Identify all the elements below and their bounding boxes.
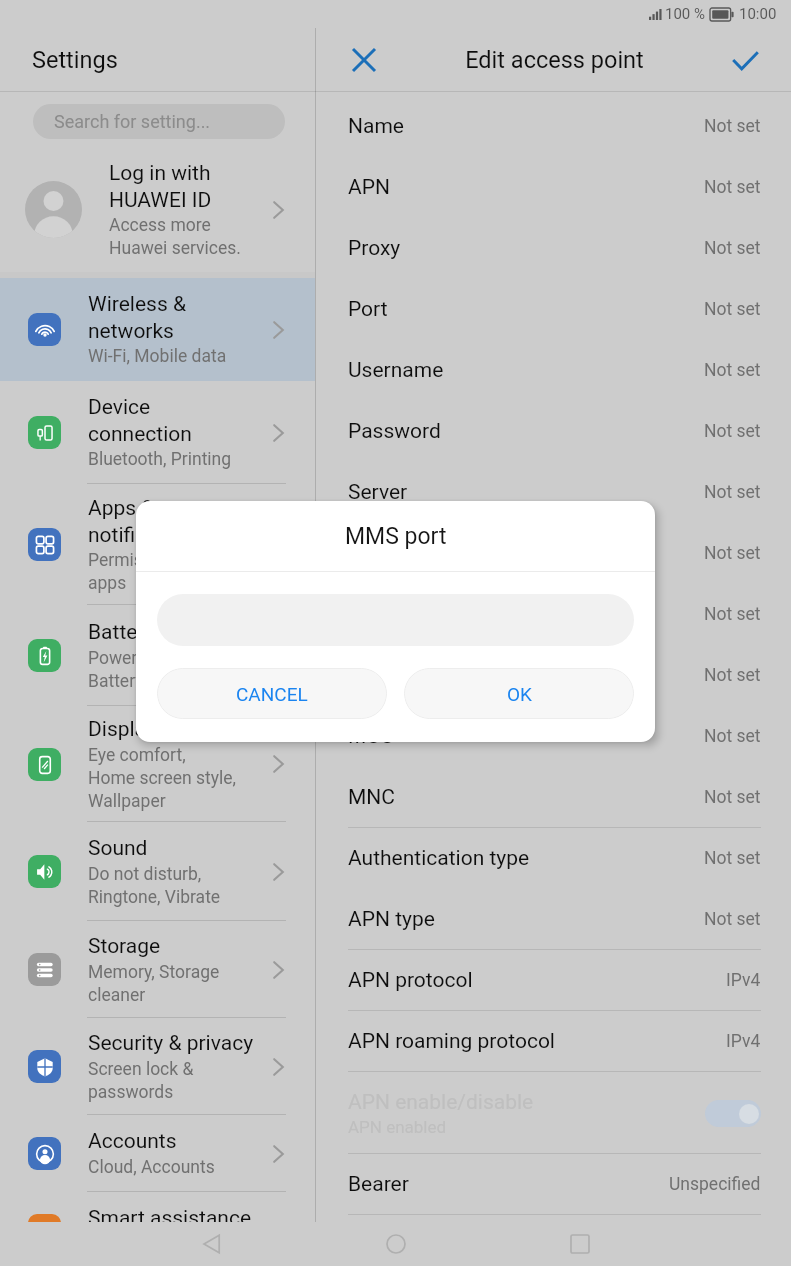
staticText: IPv4 [726,970,761,991]
button[interactable]: Security & privacy [0,1018,315,1115]
staticText: Display [88,717,156,742]
staticText: Wi-Fi, Mobile data [88,346,227,367]
staticText: Not set [704,360,761,381]
staticText: Storage [88,934,161,959]
staticText: Not set [704,726,761,747]
staticText: Port [348,297,388,322]
staticText: APN enabled [348,1117,447,1137]
staticText: Not set [704,238,761,259]
button[interactable]: APN [316,157,791,218]
staticText: APN [348,175,390,200]
button[interactable]: APN protocol [316,950,791,1011]
staticText: Settings [32,46,118,74]
button[interactable]: MNC [316,767,791,828]
staticText: Unspecified [669,1174,761,1195]
button[interactable]: Username [316,340,791,401]
staticText: Not set [704,787,761,808]
button[interactable]: CANCEL [157,668,387,719]
staticText: Wireless & networks [88,292,186,343]
staticText: Edit access point [388,46,721,74]
staticText: Authentication type [348,846,530,871]
button[interactable]: MMS proxy [316,584,791,645]
staticText: Smart assistance [88,1206,252,1222]
button[interactable]: Accounts [0,1115,315,1192]
button[interactable]: Server [316,462,791,523]
button[interactable]: Storage [0,921,315,1018]
staticText: CANCEL [236,683,308,705]
button[interactable]: Name [316,96,791,157]
button[interactable]: Log in with HUAWEI ID [0,139,315,272]
staticText: Eye comfort, Home screen style, Wallpape… [88,745,236,811]
staticText: Not set [704,177,761,198]
staticText: Not set [704,909,761,930]
button[interactable]: Recent apps [488,1222,672,1266]
staticText: MNC [348,785,395,810]
button[interactable]: APN roaming protocol [316,1011,791,1072]
button[interactable]: Device connection [0,381,315,484]
staticText: IPv4 [726,1031,761,1052]
staticText: Password [348,419,441,444]
staticText: Not set [704,604,761,625]
staticText: APN protocol [348,968,473,993]
staticText: Not set [704,543,761,564]
staticText: Username [348,358,444,383]
button[interactable]: Cancel [340,36,388,84]
staticText: Access more Huawei services. [109,215,241,258]
staticText: Proxy [348,236,401,261]
staticText: Accounts [88,1129,177,1154]
staticText: MCC [348,724,394,749]
staticText: Security & privacy [88,1031,254,1056]
button[interactable]: Proxy [316,218,791,279]
staticText: Not set [704,482,761,503]
staticText: Cloud, Accounts [88,1157,215,1178]
staticText: Sound [88,836,148,861]
button[interactable]: APN type [316,889,791,950]
staticText: Apps & notifications [88,496,204,547]
staticText: MMS port [345,523,447,550]
button[interactable]: Sound [0,822,315,921]
staticText: Battery [88,620,155,645]
button[interactable]: Settings [0,28,315,92]
staticText: Server [348,480,408,505]
button[interactable]: APN enable/disable [316,1072,791,1154]
staticText: Not set [704,848,761,869]
staticText: Power saving, Battery usage [88,648,196,691]
button[interactable]: Wireless & networks [0,278,315,381]
staticText: APN enable/disable [348,1090,534,1115]
staticText: Memory, Storage cleaner [88,962,220,1005]
button[interactable]: Apps & notifications [0,484,315,605]
button[interactable]: Smart assistance [0,1192,315,1222]
staticText: Search for setting... [54,111,211,132]
button[interactable]: Battery [0,605,315,706]
staticText: MMS port [348,663,441,688]
staticText: Name [348,114,404,139]
staticText: OK [507,683,532,705]
staticText: 10:00 [739,5,777,23]
staticText: Device connection [88,395,192,446]
staticText: Screen lock & passwords [88,1059,194,1102]
button[interactable]: MMS port [316,645,791,706]
staticText: Permissions, Default apps [88,550,249,593]
button[interactable]: MMSC [316,523,791,584]
staticText: Log in with HUAWEI ID [109,161,212,212]
staticText: Not set [704,421,761,442]
button[interactable]: Password [316,401,791,462]
staticText: APN roaming protocol [348,1029,555,1054]
button[interactable]: Bearer [316,1154,791,1215]
staticText: Do not disturb, Ringtone, Vibrate [88,864,221,907]
staticText: MMSC [348,541,411,566]
button[interactable]: OK [404,668,634,719]
button[interactable]: MCC [316,706,791,767]
button[interactable]: Port [316,279,791,340]
staticText: APN type [348,907,435,932]
staticText: Bearer [348,1172,409,1197]
button[interactable]: Save [721,36,769,84]
button[interactable]: Display [0,706,315,822]
staticText: Not set [704,665,761,686]
button[interactable]: Search for setting... [33,104,285,139]
button[interactable]: Authentication type [316,828,791,889]
